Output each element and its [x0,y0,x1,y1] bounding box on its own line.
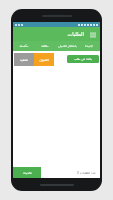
button[interactable]: العنوان [34,53,54,66]
staticText: مكتملة [19,44,29,48]
staticText: جديدة [85,44,93,48]
staticText: العنوان [39,58,49,62]
button[interactable]: تصفية [14,53,34,66]
button[interactable]: Menu [88,30,97,39]
button[interactable]: جديدة [78,41,100,51]
staticText: بحث عن طلب [74,57,92,61]
staticText: الطلبات [67,31,84,37]
button[interactable]: بانتظار العميل [56,41,78,51]
staticText: تصفية [20,58,28,62]
staticText: تحديث [23,171,32,175]
staticText: عدد الطلبات 0 [77,171,96,175]
button[interactable]: بحث عن طلب [67,55,99,63]
staticText: معلقة [41,44,49,48]
button[interactable]: معلقة [34,41,56,51]
button[interactable]: مكتملة [13,41,34,51]
button[interactable]: تحديث [13,167,41,178]
staticText: بانتظار العميل [58,44,77,48]
